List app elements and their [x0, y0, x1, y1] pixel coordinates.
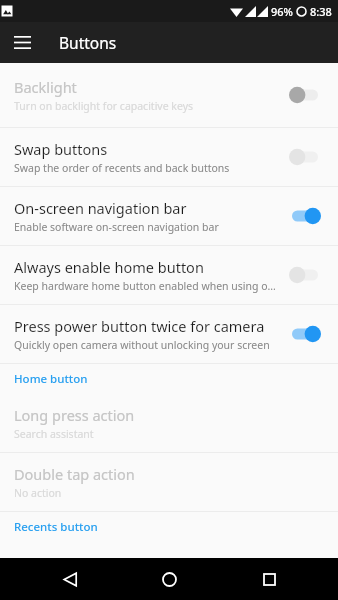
button[interactable]: Double tap action [0, 453, 338, 511]
staticText: Search assistant [14, 427, 94, 441]
staticText: Long press action [14, 405, 135, 425]
staticText: Buttons [59, 32, 117, 53]
button[interactable]: Back [40, 558, 100, 600]
button[interactable]: Backlight [0, 63, 338, 127]
staticText: On-screen navigation bar [14, 198, 187, 218]
button[interactable]: Toggle [284, 201, 328, 231]
button[interactable]: On-screen navigation bar [0, 187, 338, 245]
button[interactable]: Toggle [284, 80, 328, 110]
button[interactable]: Long press action [0, 394, 338, 452]
staticText: Turn on backlight for capacitive keys [14, 99, 194, 113]
staticText: Swap buttons [14, 139, 108, 159]
button[interactable]: Toggle [284, 319, 328, 349]
staticText: Always enable home button [14, 257, 204, 277]
staticText: Recents button [14, 519, 98, 535]
staticText: Swap the order of recents and back butto… [14, 161, 230, 175]
button[interactable]: Always enable home button [0, 246, 338, 304]
staticText: 8:38 [310, 4, 332, 19]
staticText: Backlight [14, 77, 77, 97]
button[interactable]: Toggle [284, 260, 328, 290]
staticText: Enable software on-screen navigation bar [14, 220, 219, 234]
staticText: No action [14, 486, 62, 500]
button[interactable]: Open navigation menu [0, 22, 44, 63]
button[interactable]: Home [139, 558, 199, 600]
staticText: Double tap action [14, 464, 135, 484]
staticText: Press power button twice for camera [14, 316, 265, 336]
button[interactable]: Recent apps [239, 558, 299, 600]
staticText: 96% [271, 4, 293, 19]
button[interactable]: Press power button twice for camera [0, 305, 338, 363]
button[interactable]: Toggle [284, 142, 328, 172]
button[interactable]: Swap buttons [0, 128, 338, 186]
staticText: Home button [14, 371, 88, 387]
staticText: Quickly open camera without unlocking yo… [14, 338, 270, 352]
staticText: Keep hardware home button enabled when u… [14, 279, 278, 293]
